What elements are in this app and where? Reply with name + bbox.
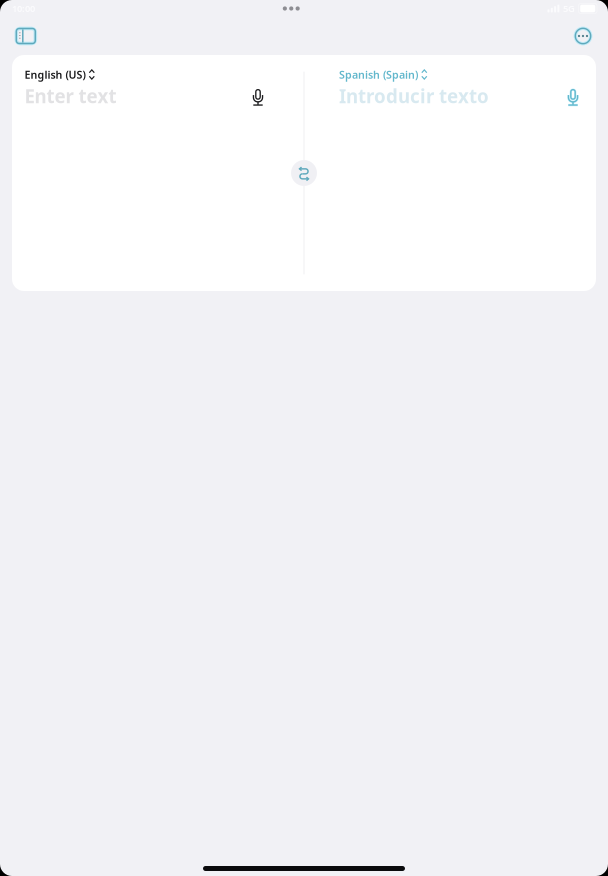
button[interactable]: More options <box>567 19 599 53</box>
staticText: 5G <box>563 2 575 15</box>
button[interactable]: English (US) <box>24 68 95 81</box>
button[interactable]: Show sidebar <box>8 19 43 53</box>
staticText: Spanish (Spain) <box>339 67 418 82</box>
button[interactable]: Dictate <box>560 81 586 110</box>
staticText: English (US) <box>24 67 85 82</box>
staticText: 10:00 <box>12 2 35 15</box>
button[interactable]: Spanish (Spain) <box>339 68 428 81</box>
button[interactable]: Dictate <box>245 81 271 110</box>
staticText: Introducir texto <box>339 84 489 108</box>
staticText: Enter text <box>24 84 116 108</box>
button[interactable]: Swap languages <box>289 158 319 188</box>
